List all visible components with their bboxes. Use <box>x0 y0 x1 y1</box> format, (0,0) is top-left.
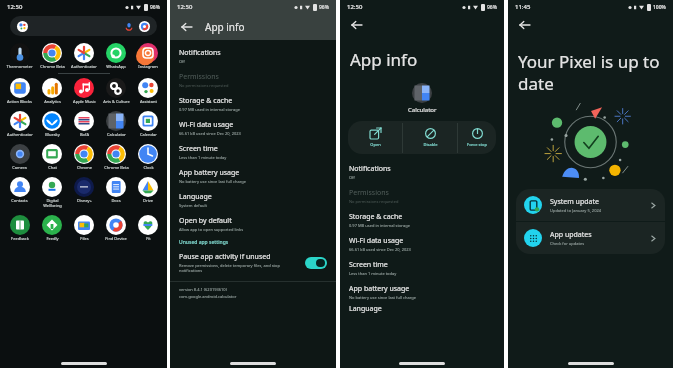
button[interactable]: Chrome Beta <box>36 41 68 71</box>
button[interactable]: Bluesky <box>36 109 68 139</box>
button[interactable]: Analytics <box>36 76 68 106</box>
staticText: App info <box>350 48 418 71</box>
staticText: Bluesky <box>45 132 60 137</box>
button[interactable] <box>10 16 157 36</box>
staticText: Chrome Beta <box>104 165 129 170</box>
staticText: Authenticator <box>7 132 33 137</box>
button[interactable]: Authenticator <box>3 109 36 139</box>
button[interactable]: Storage & cache <box>340 208 504 232</box>
button[interactable]: Apple Music <box>68 76 100 106</box>
staticText: Clock <box>143 165 154 170</box>
button[interactable]: Calendar <box>132 109 164 139</box>
button[interactable]: Files <box>68 213 100 243</box>
button[interactable]: Language <box>170 188 336 212</box>
button[interactable]: Contacts <box>3 175 36 205</box>
staticText: Contacts <box>11 198 28 203</box>
staticText: 96% <box>487 4 497 11</box>
staticText: 12:50 <box>177 3 193 11</box>
button[interactable]: Chrome <box>68 142 100 172</box>
button[interactable]: Unused app settings <box>170 236 336 249</box>
button[interactable]: Calculator <box>100 109 132 139</box>
button[interactable]: Notifications <box>170 44 336 68</box>
button[interactable]: Find Device <box>100 213 132 243</box>
staticText: Camera <box>12 165 27 170</box>
button[interactable]: Pause app activity if unused <box>170 249 336 276</box>
staticText: Assistant <box>140 99 157 104</box>
staticText: Chat <box>48 165 57 170</box>
staticText: Disable <box>423 142 438 147</box>
staticText: Wi-Fi data usage <box>179 120 234 130</box>
button[interactable]: App battery usage <box>340 280 504 304</box>
staticText: Calculator <box>107 132 126 137</box>
staticText: 96% <box>150 4 160 11</box>
staticText: App info <box>205 20 245 34</box>
button[interactable]: Disable <box>403 121 457 154</box>
staticText: BofA <box>80 132 89 137</box>
button[interactable]: Camera <box>3 142 36 172</box>
button[interactable]: BofA <box>68 109 100 139</box>
staticText: Action Blocks <box>7 99 32 104</box>
button[interactable]: Fit <box>132 213 164 243</box>
staticText: Calculator <box>408 106 437 114</box>
staticText: Permissions <box>349 188 389 198</box>
staticText: No battery use since last full charge <box>179 179 246 184</box>
button[interactable]: Storage & cache <box>170 92 336 116</box>
button[interactable]: Feedback <box>3 213 36 243</box>
staticText: Allow app to open supported links <box>179 227 244 232</box>
button[interactable]: App battery usage <box>170 164 336 188</box>
button[interactable]: Permissions <box>340 184 504 208</box>
button[interactable]: Wi-Fi data usage <box>170 116 336 140</box>
button[interactable]: Docs <box>100 175 132 205</box>
staticText: No permissions requested <box>349 199 399 204</box>
button[interactable] <box>305 257 327 269</box>
staticText: Analytics <box>44 99 61 104</box>
button[interactable]: Back <box>347 15 367 35</box>
staticText: 100% <box>653 4 666 11</box>
staticText: Apple Music <box>73 99 96 104</box>
button[interactable]: WhatsApp <box>100 41 132 71</box>
staticText: Thermometer <box>6 64 33 69</box>
staticText: Screen time <box>349 260 388 270</box>
staticText: WhatsApp <box>106 64 126 69</box>
button[interactable]: Back <box>515 15 535 35</box>
button[interactable]: Chat <box>36 142 68 172</box>
staticText: Chrome Beta <box>40 64 65 69</box>
staticText: 66.61 kB used since Dec 20, 2023 <box>179 131 241 136</box>
button[interactable]: Force stop <box>458 121 496 154</box>
staticText: 0.97 MB used in internal storage <box>179 107 240 112</box>
button[interactable]: Screen time <box>340 256 504 280</box>
button[interactable]: Notifications <box>340 160 504 184</box>
button[interactable]: Wi-Fi data usage <box>340 232 504 256</box>
button[interactable]: Instagram <box>132 41 164 71</box>
button[interactable]: Assistant <box>132 76 164 106</box>
staticText: Notifications <box>349 164 391 174</box>
staticText: Fit <box>146 236 151 241</box>
button[interactable]: Open <box>348 121 402 154</box>
staticText: com.google.android.calculator <box>179 294 237 299</box>
button[interactable]: Arts & Culture <box>100 76 132 106</box>
staticText: Docs <box>111 198 121 203</box>
button[interactable]: Thermometer <box>3 41 36 71</box>
button[interactable]: Back <box>177 17 197 37</box>
button[interactable]: Authenticator <box>68 41 100 71</box>
button[interactable]: Open by default <box>170 212 336 236</box>
button[interactable]: Permissions <box>170 68 336 92</box>
button[interactable]: Disney+ <box>68 175 100 205</box>
button[interactable]: Drive <box>132 175 164 205</box>
button[interactable]: App updates <box>516 222 665 254</box>
staticText: Permissions <box>179 72 219 82</box>
staticText: App battery usage <box>179 168 240 178</box>
button[interactable]: Chrome Beta <box>100 142 132 172</box>
staticText: No permissions requested <box>179 83 229 88</box>
button[interactable]: Feedly <box>36 213 68 243</box>
staticText: 11:45 <box>515 3 531 11</box>
button[interactable]: Screen time <box>170 140 336 164</box>
staticText: Feedback <box>11 236 29 241</box>
staticText: 96% <box>319 4 329 11</box>
staticText: Less than 1 minute today <box>349 271 397 276</box>
button[interactable]: Digital Wellbeing <box>36 175 68 210</box>
staticText: 0.97 MB used in internal storage <box>349 223 410 228</box>
button[interactable]: Action Blocks <box>3 76 36 106</box>
button[interactable]: Clock <box>132 142 164 172</box>
button[interactable]: System update <box>516 189 665 221</box>
